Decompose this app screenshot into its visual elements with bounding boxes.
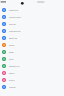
button[interactable]: Notifications and <box>0 27 64 34</box>
staticText: Sound <box>9 58 14 60</box>
staticText: Location s <box>9 86 16 88</box>
staticText: Privacy s <box>9 79 15 81</box>
staticText: Connected device <box>9 16 21 18</box>
button[interactable]: Privacy s <box>0 76 64 83</box>
button[interactable]: Location s <box>0 83 64 90</box>
staticText: Security <box>9 72 15 74</box>
button[interactable]: Display <box>0 48 64 55</box>
button[interactable]: Storage <box>0 41 64 48</box>
staticText: Wallpaper & sty <box>9 65 20 67</box>
staticText: Storage <box>9 44 15 46</box>
button[interactable]: Battery stati <box>0 34 64 41</box>
button[interactable]: Wallpaper & sty <box>0 62 64 69</box>
button[interactable]: Connected device <box>0 13 64 20</box>
button[interactable]: Sound <box>0 55 64 62</box>
staticText: Network & int <box>9 9 19 11</box>
button[interactable]: Security <box>0 69 64 76</box>
staticText: Notifications and <box>9 30 21 32</box>
staticText: Display <box>9 51 14 53</box>
staticText: Battery stati <box>9 37 18 39</box>
button[interactable]: Apps nots <box>0 20 64 27</box>
button[interactable]: Network & int <box>0 6 64 13</box>
staticText: Apps nots <box>9 23 16 25</box>
